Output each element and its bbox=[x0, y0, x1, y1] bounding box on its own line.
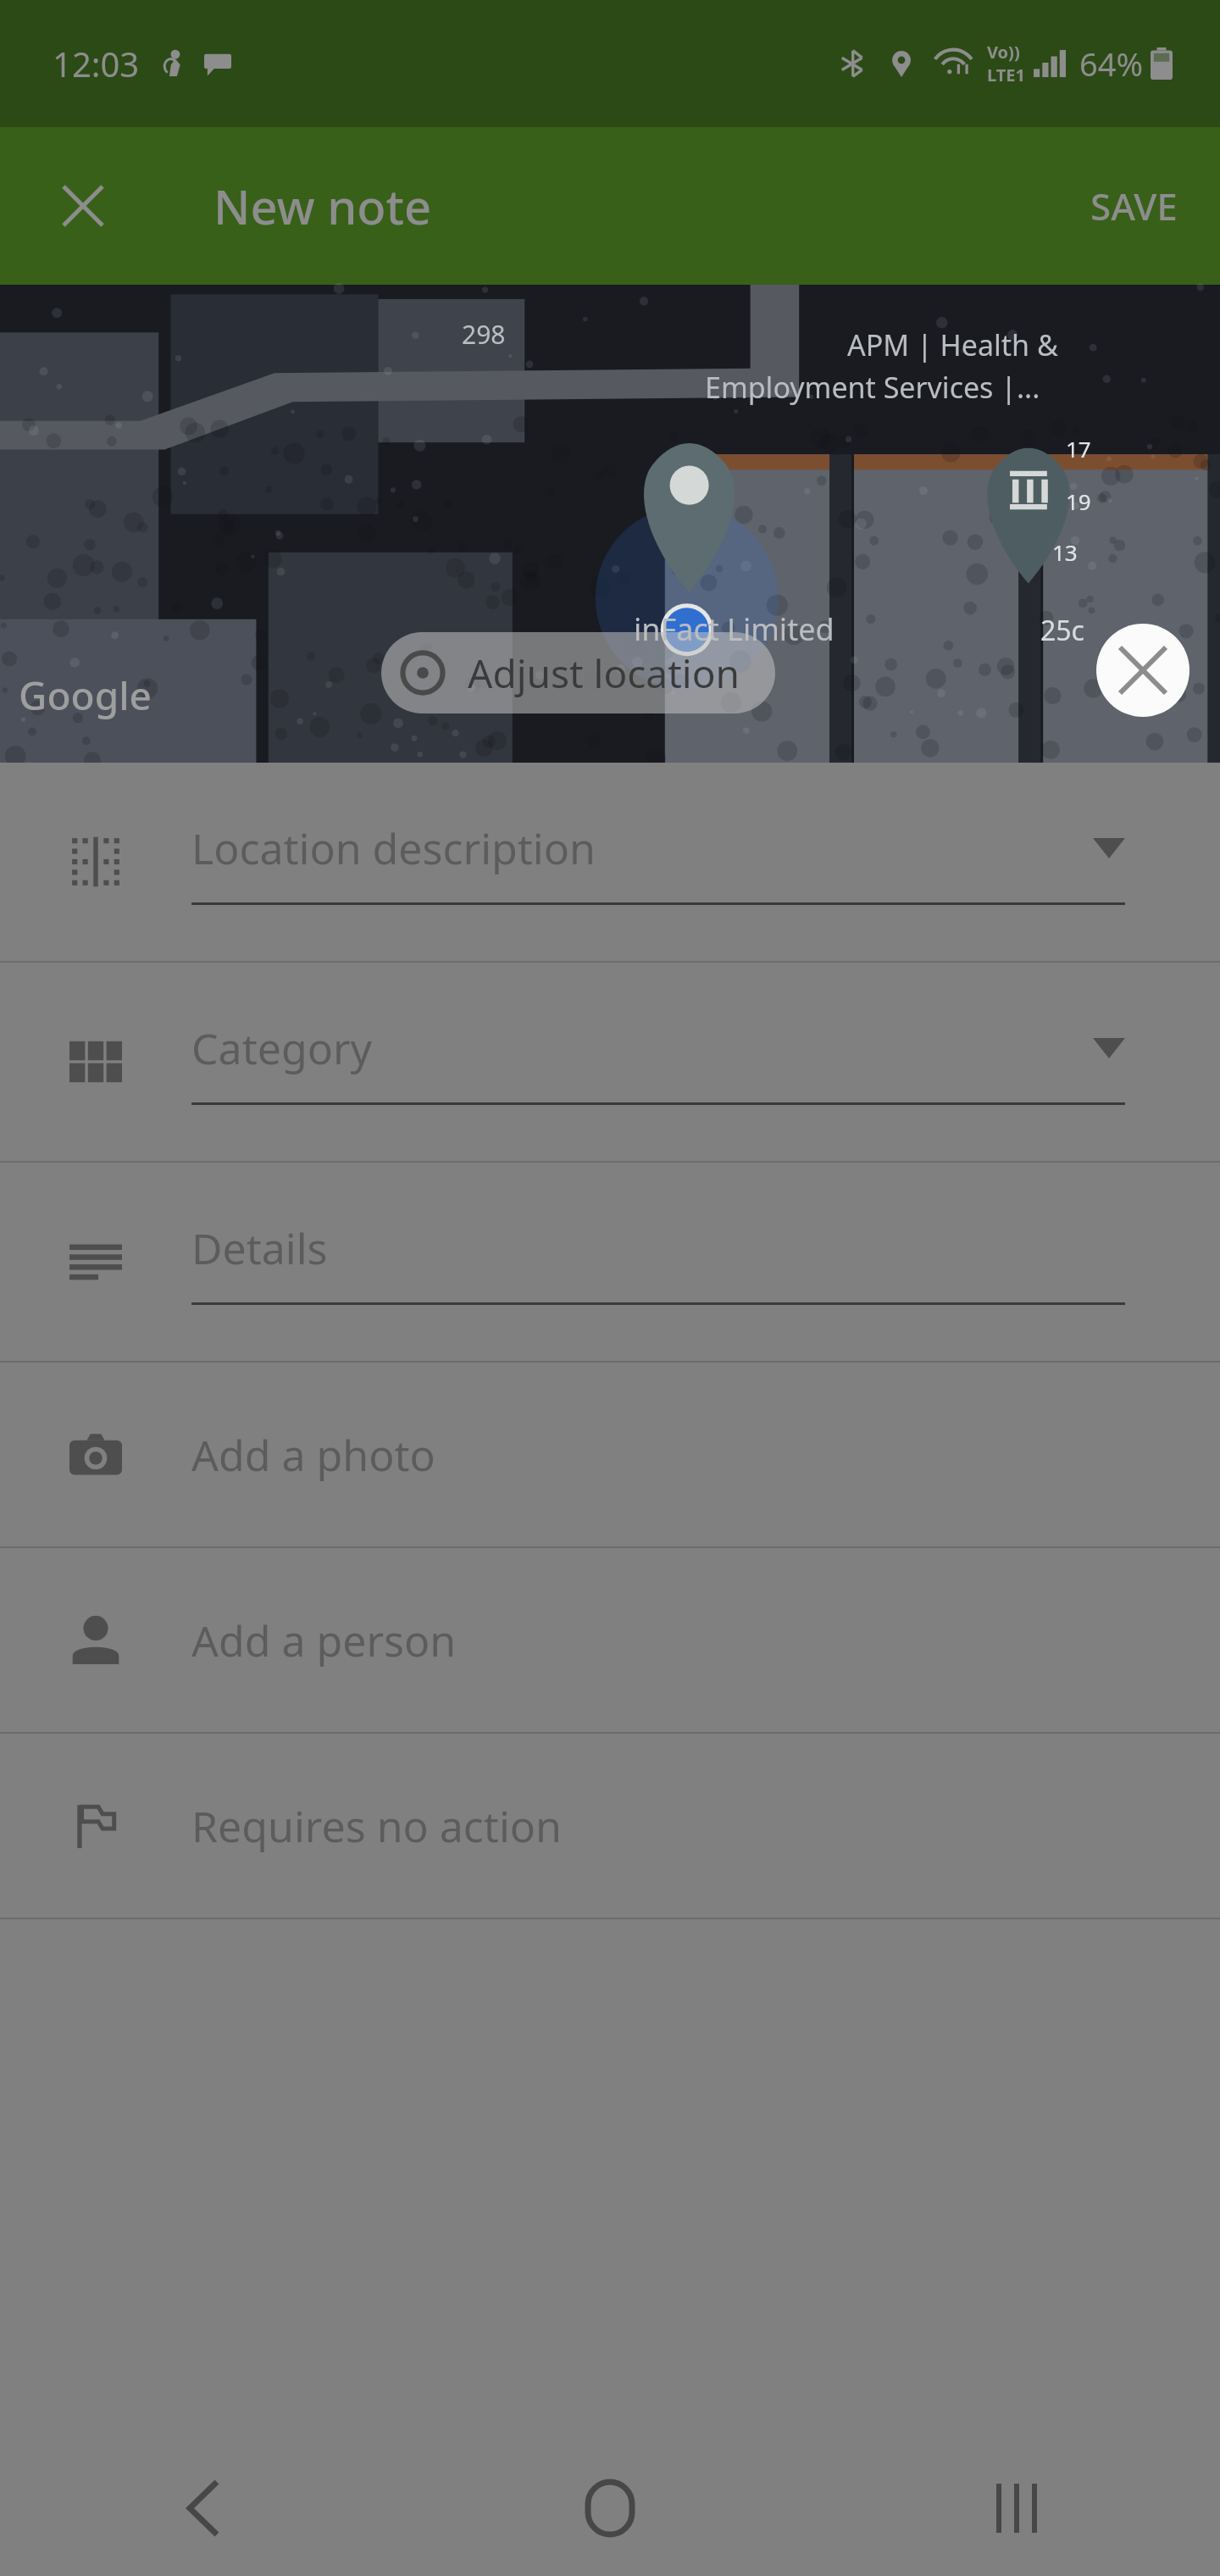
staticText: Add a person bbox=[191, 1612, 457, 1669]
button[interactable]: Back bbox=[0, 2440, 407, 2576]
staticText: Details bbox=[191, 1219, 1125, 1277]
button[interactable]: SAVE bbox=[1068, 164, 1200, 248]
staticText: Requires no action bbox=[191, 1797, 562, 1855]
staticText: 17 bbox=[1066, 434, 1091, 464]
staticText: SAVE bbox=[1090, 180, 1178, 231]
button[interactable]: Add a photo bbox=[0, 1363, 1220, 1546]
staticText: LTE1 bbox=[987, 64, 1025, 86]
staticText: Google bbox=[19, 669, 152, 722]
staticText: 25c bbox=[1040, 612, 1084, 649]
button[interactable]: Add a person bbox=[0, 1548, 1220, 1732]
button[interactable]: Adjust location bbox=[381, 632, 775, 713]
button[interactable]: Home bbox=[407, 2440, 813, 2576]
staticText: 12:03 bbox=[53, 41, 140, 86]
button[interactable]: Close map bbox=[1096, 624, 1189, 717]
button[interactable]: Category bbox=[0, 963, 1220, 1161]
button[interactable]: Requires no action bbox=[0, 1734, 1220, 1918]
staticText: Adjust location bbox=[468, 647, 740, 700]
staticText: 64% bbox=[1079, 42, 1144, 86]
button[interactable]: Close bbox=[42, 165, 124, 247]
button[interactable]: Location description bbox=[0, 763, 1220, 961]
staticText: 19 bbox=[1066, 486, 1091, 516]
staticText: Add a photo bbox=[191, 1426, 435, 1484]
staticText: Vo)) bbox=[987, 41, 1020, 64]
staticText: 298 bbox=[462, 317, 506, 352]
staticText: 13 bbox=[1052, 537, 1078, 567]
button[interactable]: Recent apps bbox=[813, 2440, 1220, 2576]
staticText: APM | Health & bbox=[847, 325, 1058, 364]
staticText: Employment Services |... bbox=[705, 368, 1040, 407]
staticText: inFact Limited bbox=[634, 608, 835, 650]
staticText: New note bbox=[213, 174, 432, 238]
staticText: Location description bbox=[191, 819, 1093, 877]
staticText: Category bbox=[191, 1019, 1093, 1077]
button[interactable]: Details bbox=[0, 1163, 1220, 1361]
